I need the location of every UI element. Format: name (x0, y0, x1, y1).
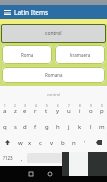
button[interactable]: v (46, 134, 57, 150)
button[interactable]: ' (79, 134, 90, 150)
button[interactable]: 4 (30, 102, 41, 118)
button[interactable]: c (35, 134, 46, 150)
staticText: z (14, 107, 17, 115)
staticText: t (45, 107, 48, 115)
button[interactable]: Back (24, 167, 38, 181)
button[interactable]: x (25, 134, 35, 150)
staticText: , (21, 155, 23, 162)
button[interactable]: Shift (0, 134, 15, 150)
button[interactable]: 8 (74, 102, 85, 118)
staticText: f (34, 123, 37, 131)
button[interactable]: control (0, 86, 107, 102)
button[interactable]: 9 (85, 102, 96, 118)
staticText: kramaera (70, 52, 91, 58)
button[interactable]: 2 (10, 102, 20, 118)
staticText: 5 (46, 104, 48, 108)
staticText: 8 (79, 104, 81, 108)
button[interactable]: 0 (96, 102, 107, 118)
staticText: x (28, 139, 32, 147)
button[interactable]: f (30, 118, 41, 134)
staticText: c (39, 139, 42, 147)
staticText: l (90, 123, 92, 131)
button[interactable]: 6 (52, 102, 63, 118)
button[interactable]: q (0, 118, 10, 134)
button[interactable]: w (15, 134, 25, 150)
button[interactable]: Menu (0, 5, 14, 19)
button[interactable]: 7 (63, 102, 74, 118)
button[interactable]: , (16, 150, 27, 166)
staticText: n (72, 139, 76, 147)
staticText: 2 (14, 104, 16, 108)
staticText: Roma (21, 52, 34, 58)
staticText: g (45, 123, 49, 131)
button[interactable]: Space (27, 153, 81, 163)
button[interactable]: Roma (2, 45, 52, 64)
staticText: control (47, 92, 61, 97)
button[interactable]: m (96, 118, 107, 134)
staticText: u (67, 107, 71, 115)
staticText: Latin Items (14, 8, 49, 17)
staticText: d (23, 123, 27, 131)
staticText: i (79, 107, 81, 115)
staticText: 4 (35, 104, 37, 108)
staticText: r (34, 107, 37, 115)
staticText: h (56, 123, 60, 131)
button[interactable]: l (85, 118, 96, 134)
button[interactable]: h (52, 118, 63, 134)
staticText: b (61, 139, 65, 147)
button[interactable]: 3 (20, 102, 30, 118)
staticText: w (18, 139, 23, 147)
button[interactable]: g (41, 118, 52, 134)
button[interactable]: j (63, 118, 74, 134)
staticText: v (50, 139, 54, 147)
staticText: k (78, 123, 82, 131)
button[interactable]: Home (43, 167, 57, 181)
staticText: Romana (45, 72, 63, 78)
staticText: 3 (24, 104, 26, 108)
button[interactable]: Backspace (90, 134, 107, 150)
button[interactable]: control (1, 24, 106, 43)
button[interactable]: s (10, 118, 20, 134)
button[interactable]: kramaera (55, 45, 105, 64)
button[interactable]: ?123 (0, 150, 16, 166)
staticText: 0 (101, 104, 103, 108)
staticText: 9 (90, 104, 92, 108)
staticText: y (56, 107, 60, 115)
button[interactable]: 5 (41, 102, 52, 118)
button[interactable]: k (74, 118, 85, 134)
staticText: e (23, 107, 27, 115)
button[interactable]: 1 (0, 102, 10, 118)
button[interactable]: n (68, 134, 79, 150)
button[interactable]: . (81, 150, 92, 166)
button[interactable]: Enter (92, 150, 107, 166)
staticText: 6 (57, 104, 59, 108)
staticText: m (99, 123, 105, 131)
staticText: p (100, 107, 104, 115)
staticText: 7 (68, 104, 70, 108)
staticText: j (68, 123, 70, 131)
staticText: ' (84, 139, 86, 147)
staticText: ?123 (3, 155, 13, 161)
button[interactable]: d (20, 118, 30, 134)
staticText: 1 (4, 104, 6, 108)
staticText: s (14, 123, 17, 131)
staticText: a (3, 107, 7, 115)
button[interactable]: b (57, 134, 68, 150)
staticText: control (45, 30, 62, 37)
button[interactable]: Romana (2, 67, 105, 83)
staticText: o (89, 107, 93, 115)
staticText: q (3, 123, 7, 131)
